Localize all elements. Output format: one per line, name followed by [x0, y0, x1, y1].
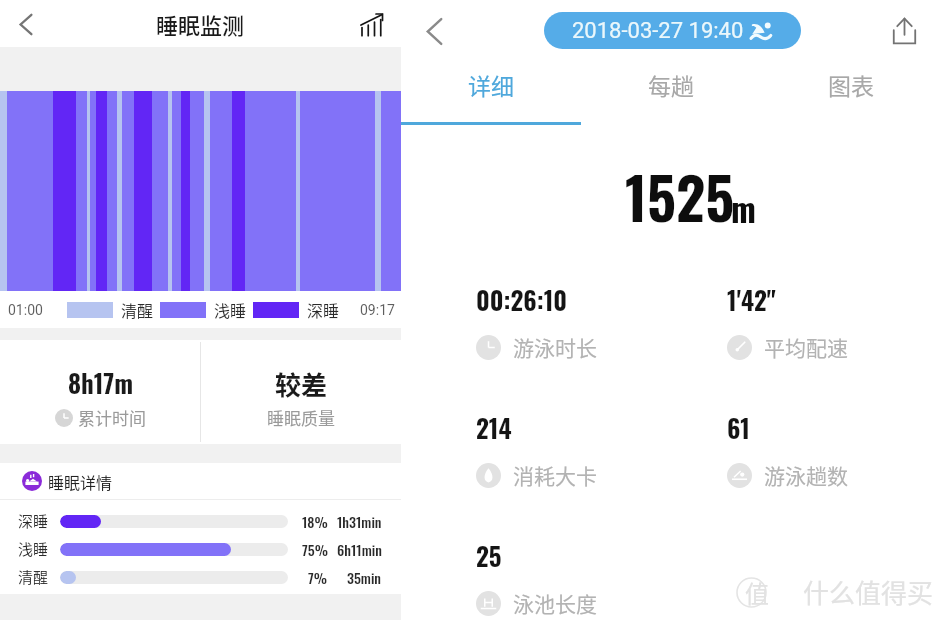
staticText: 1525 [625, 154, 735, 238]
button[interactable]: 00:26:10 [476, 281, 597, 362]
staticText: 25 [476, 537, 502, 574]
staticText: 较差 [275, 365, 328, 403]
staticText: 值 [745, 575, 769, 610]
button[interactable]: 8h17m [0, 340, 200, 444]
staticText: 61 [727, 409, 750, 446]
staticText: 游泳趟数 [764, 460, 848, 490]
staticText: 浅睡 [214, 298, 247, 321]
button[interactable]: 每趟 [581, 62, 761, 125]
staticText: 图表 [828, 68, 874, 101]
button[interactable]: 2018-03-27 19:40 [544, 12, 801, 49]
staticText: 消耗大卡 [513, 460, 597, 490]
button[interactable]: 25 [476, 537, 597, 618]
button[interactable]: 详细 [401, 62, 581, 125]
staticText: 01:00 [8, 302, 43, 318]
staticText: 深睡 [18, 510, 49, 532]
staticText: 1h31min [337, 511, 382, 532]
staticText: 深睡 [307, 298, 340, 321]
staticText: 8h17m [68, 364, 134, 401]
staticText: 6h11min [337, 539, 382, 560]
button[interactable]: Statistics [353, 6, 389, 42]
staticText: 泳池长度 [513, 588, 597, 618]
staticText: 清醒 [121, 298, 154, 321]
button[interactable]: 图表 [761, 62, 941, 125]
button[interactable]: 61 [727, 409, 848, 490]
button[interactable]: Back [415, 12, 453, 50]
staticText: 什么值得买 [803, 573, 934, 611]
staticText: 00:26:10 [476, 281, 568, 318]
staticText: 累计时间 [78, 405, 146, 430]
button[interactable]: 214 [476, 409, 597, 490]
staticText: 2018-03-27 19:40 [572, 18, 744, 44]
button[interactable]: 浅睡 [0, 538, 401, 560]
staticText: 35min [347, 567, 382, 588]
button[interactable]: 1'42" [727, 281, 848, 362]
staticText: 游泳时长 [513, 332, 597, 362]
staticText: 1'42" [727, 281, 776, 318]
staticText: 75% [302, 539, 328, 560]
staticText: 详细 [468, 68, 514, 101]
staticText: 18% [302, 511, 328, 532]
button[interactable]: Back [7, 5, 45, 43]
staticText: 睡眠详情 [48, 470, 113, 493]
staticText: 214 [476, 409, 512, 446]
staticText: 浅睡 [18, 538, 49, 560]
staticText: 睡眠质量 [267, 405, 335, 430]
staticText: 清醒 [18, 566, 49, 588]
button[interactable]: 深睡 [0, 510, 401, 532]
button[interactable]: 清醒 [0, 566, 401, 588]
staticText: 每趟 [648, 68, 694, 101]
button[interactable]: 较差 [201, 340, 401, 444]
staticText: 7% [308, 567, 328, 588]
staticText: 09:17 [360, 302, 395, 318]
button[interactable]: Share [885, 12, 923, 50]
staticText: 平均配速 [764, 332, 848, 362]
staticText: 睡眠监测 [156, 8, 245, 40]
staticText: m [731, 184, 756, 233]
